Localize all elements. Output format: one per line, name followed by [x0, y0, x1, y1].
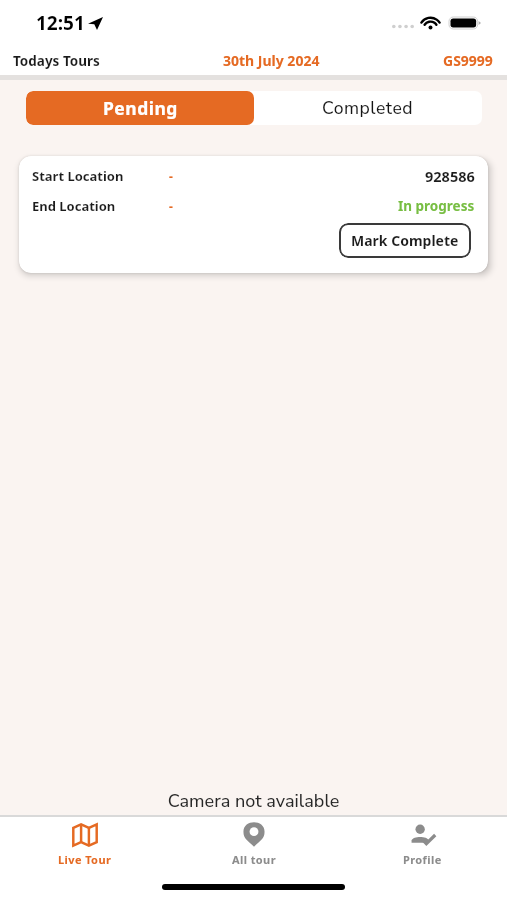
staticText: Completed [322, 96, 414, 120]
staticText: Camera not available [0, 789, 507, 814]
staticText: Todays Tours [13, 52, 100, 70]
other: All tour [243, 823, 265, 847]
staticText: Profile [403, 852, 442, 867]
staticText: - [169, 198, 173, 214]
staticText: End Location [32, 197, 116, 215]
staticText: Live Tour [58, 852, 112, 867]
staticText: 30th July 2024 [223, 51, 320, 70]
staticText: All tour [232, 852, 276, 867]
button[interactable]: Completed [254, 91, 482, 125]
button[interactable]: Profile [338, 817, 507, 867]
button[interactable]: Pending [26, 91, 254, 125]
button[interactable]: Live Tour [0, 817, 169, 867]
staticText: 12:51 [36, 10, 85, 36]
staticText: In progress [398, 197, 475, 215]
staticText: - [169, 168, 173, 184]
staticText: 928586 [425, 166, 475, 186]
other: Live Tour [72, 823, 98, 847]
staticText: GS9999 [443, 51, 493, 70]
other: Profile [410, 823, 436, 847]
staticText: Start Location [32, 167, 124, 185]
button[interactable]: Mark Complete [339, 223, 471, 258]
staticText: Pending [103, 96, 178, 120]
button[interactable]: Start Location [19, 156, 488, 273]
staticText: Mark Complete [351, 231, 459, 250]
button[interactable]: All tour [169, 817, 338, 867]
